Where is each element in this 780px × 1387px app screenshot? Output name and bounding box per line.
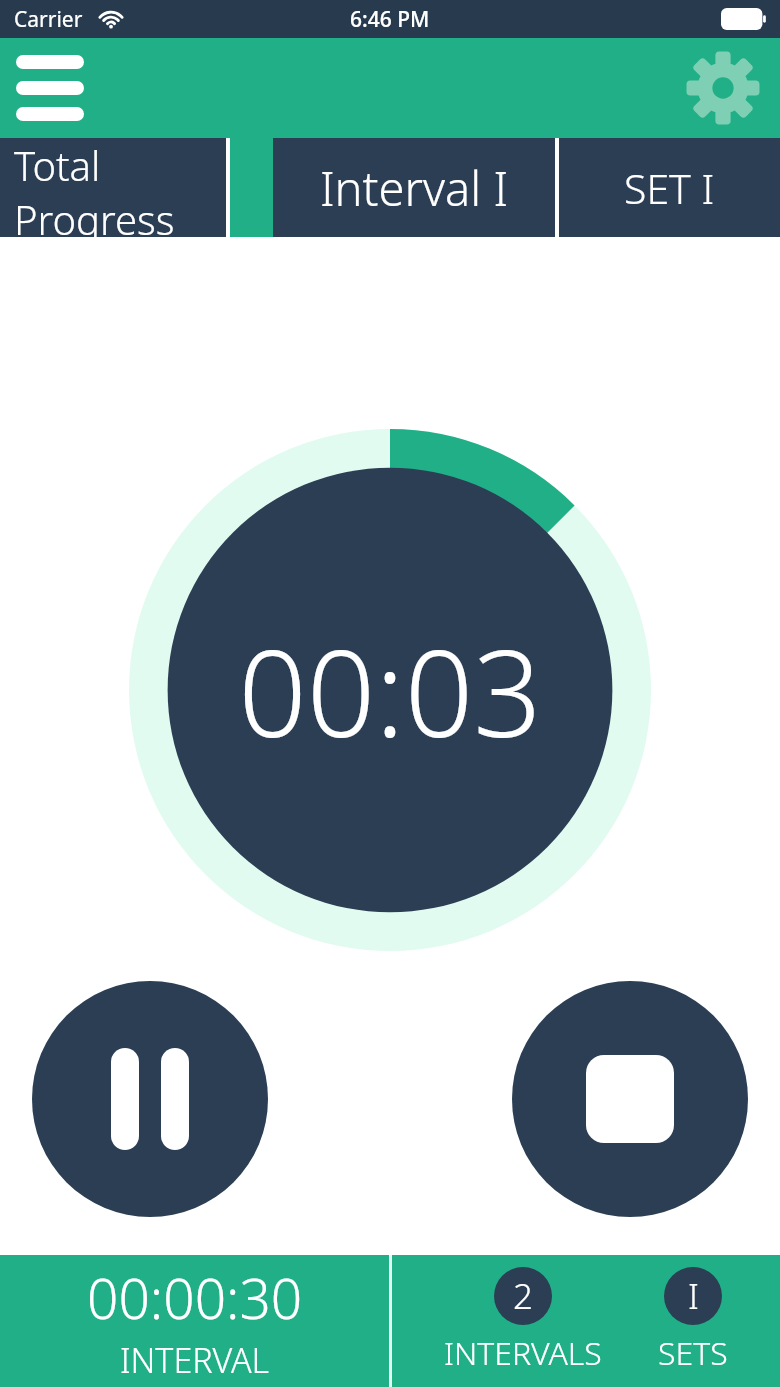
staticText: 00:03 bbox=[238, 609, 542, 772]
button[interactable]: 2 bbox=[440, 1267, 606, 1375]
staticText: INTERVALS bbox=[444, 1331, 602, 1375]
button[interactable]: 00:00:30 bbox=[0, 1255, 389, 1387]
staticText: Total Progress bbox=[14, 138, 226, 237]
button[interactable]: Menu bbox=[0, 49, 94, 127]
button[interactable]: I bbox=[654, 1267, 732, 1375]
staticText: SET I bbox=[624, 160, 715, 216]
staticText: 6:46 PM bbox=[350, 5, 430, 34]
staticText: INTERVAL bbox=[120, 1337, 270, 1383]
staticText: Carrier bbox=[14, 5, 83, 34]
staticText: Interval I bbox=[320, 156, 508, 220]
staticText: 00:00:30 bbox=[87, 1260, 303, 1335]
button[interactable]: Total Progress bbox=[0, 138, 226, 237]
staticText: I bbox=[688, 1272, 699, 1320]
staticText: 2 bbox=[513, 1272, 533, 1320]
button[interactable]: Pause bbox=[32, 981, 268, 1217]
staticText: SETS bbox=[658, 1331, 728, 1375]
button[interactable]: Stop bbox=[512, 981, 748, 1217]
button[interactable]: Settings bbox=[683, 48, 763, 128]
button[interactable]: SET I bbox=[559, 138, 780, 237]
button[interactable]: Interval I bbox=[273, 138, 555, 237]
